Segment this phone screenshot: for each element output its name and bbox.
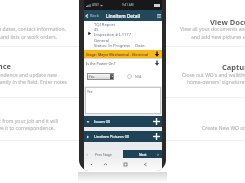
staticText: AT&T: [92, 3, 99, 7]
staticText: Close out WO's and walkthroughs with: [182, 72, 245, 79]
button[interactable]: Keyboard: [86, 158, 96, 171]
staticText: Inspection # I-1177: [94, 32, 132, 38]
staticText: Status: In Progress Date:: [94, 43, 146, 49]
staticText: TQI Report: [94, 22, 115, 28]
staticText: Capture Signatures: [222, 62, 245, 72]
staticText: home-owners' signatures on your device: [187, 79, 245, 86]
button[interactable]: Expand: [87, 31, 92, 36]
staticText: Review correspondence and update new: [0, 72, 57, 79]
staticText: General: [94, 38, 110, 44]
staticText: property warranty dates, contact informa…: [0, 26, 66, 33]
staticText: on the go right from your job and it wil…: [0, 118, 58, 125]
staticText: information instantly in the field. Ente…: [0, 79, 67, 86]
button[interactable]: Next: [123, 150, 162, 158]
button[interactable]: Stage: Major Mechanical - Electrical: [84, 50, 162, 58]
staticText: Next: [139, 152, 147, 157]
staticText: Lineitem Detail: [106, 13, 141, 19]
staticText: Stage: Major Mechanical - Electrical: [86, 52, 149, 57]
button[interactable]: Lineitem Pictures (0): [84, 131, 162, 142]
button[interactable]: Back: [140, 158, 150, 171]
button[interactable]: Back: [84, 11, 101, 20]
staticText: Lineitem Pictures (0): [94, 134, 130, 139]
staticText: Back: [90, 13, 99, 18]
staticText: automatically save it to correspondence.: [0, 125, 55, 132]
staticText: 9:41 AM: [122, 3, 134, 7]
staticText: and add new pictures during your: [191, 34, 245, 41]
staticText: Prev Stage: [95, 152, 112, 157]
staticText: Issues (0): [94, 119, 111, 124]
staticText: >: [157, 152, 160, 157]
staticText: 45: [94, 27, 99, 33]
staticText: N/A: [135, 74, 142, 79]
button[interactable]: Is the Power On?: [84, 59, 162, 67]
staticText: View all your documents and photos: [180, 26, 245, 33]
staticText: notes, photos, and lists or work orders.: [0, 34, 57, 41]
button[interactable]: Menu: [155, 11, 162, 20]
button[interactable]: Recents: [100, 158, 110, 171]
staticText: Is the Power On?: [86, 61, 116, 66]
staticText: Create New WO on the Go: [202, 125, 245, 132]
staticText: Job Correspondence: [0, 61, 11, 71]
button[interactable]: Issues (0): [84, 116, 162, 127]
staticText: Yes: [87, 74, 95, 79]
button[interactable]: Add: [152, 132, 161, 141]
staticText: <: [86, 152, 89, 157]
staticText: View Documents: [210, 17, 245, 27]
button[interactable]: Add: [152, 117, 161, 126]
button[interactable]: Yes: [87, 73, 114, 80]
button[interactable]: <: [84, 150, 123, 158]
staticText: Yes: [87, 89, 93, 94]
button[interactable]: Home: [120, 158, 130, 171]
